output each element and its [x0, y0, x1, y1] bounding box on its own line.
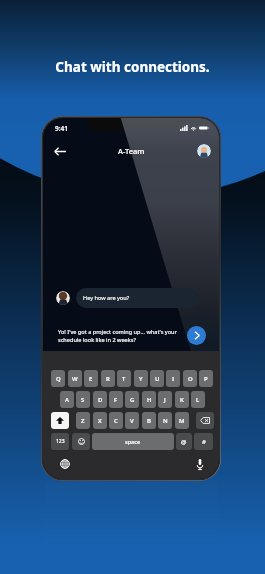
button[interactable]: Hey how are you?: [76, 288, 198, 308]
staticText: D: [98, 396, 103, 404]
staticText: C: [114, 417, 118, 425]
staticText: Yo! I've got a project coming up... what…: [58, 328, 185, 344]
staticText: K: [180, 396, 184, 404]
button[interactable]: K: [175, 391, 189, 408]
staticText: G: [130, 396, 135, 404]
staticText: V: [130, 417, 134, 425]
button[interactable]: P: [199, 370, 213, 387]
staticText: O: [188, 375, 193, 383]
staticText: A-Team: [118, 146, 145, 156]
button[interactable]: G: [125, 391, 139, 408]
staticText: Q: [56, 375, 61, 383]
staticText: N: [163, 417, 168, 425]
button[interactable]: V: [125, 412, 139, 429]
button[interactable]: Change language: [59, 458, 71, 470]
button[interactable]: E: [84, 370, 98, 387]
button[interactable]: H: [142, 391, 156, 408]
button[interactable]: A: [60, 391, 74, 408]
staticText: Y: [139, 375, 143, 383]
button[interactable]: U: [150, 370, 164, 387]
staticText: M: [179, 417, 185, 425]
button[interactable]: #: [194, 433, 213, 450]
button[interactable]: D: [93, 391, 107, 408]
button[interactable]: N: [158, 412, 172, 429]
button[interactable]: B: [142, 412, 156, 429]
staticText: A: [65, 396, 69, 404]
button[interactable]: T: [117, 370, 131, 387]
button[interactable]: R: [101, 370, 115, 387]
staticText: 123: [56, 438, 65, 445]
staticText: X: [98, 417, 102, 425]
staticText: P: [204, 375, 208, 383]
button[interactable]: S: [76, 391, 90, 408]
staticText: #: [202, 438, 206, 446]
button[interactable]: Profile: [197, 144, 211, 158]
button[interactable]: Shift: [51, 412, 69, 429]
staticText: @: [181, 438, 187, 446]
staticText: B: [147, 417, 151, 425]
button[interactable]: Back: [49, 140, 71, 162]
staticText: T: [122, 375, 126, 383]
staticText: 9:41: [55, 124, 68, 133]
button[interactable]: I: [166, 370, 180, 387]
staticText: E: [89, 375, 93, 383]
button[interactable]: space: [92, 433, 174, 450]
staticText: Z: [81, 417, 85, 425]
button[interactable]: M: [175, 412, 189, 429]
button[interactable]: Z: [76, 412, 90, 429]
button[interactable]: Emoji: [72, 433, 90, 450]
button[interactable]: Backspace: [196, 412, 214, 429]
button[interactable]: Voice input: [194, 458, 206, 470]
button[interactable]: L: [191, 391, 205, 408]
button[interactable]: Q: [51, 370, 65, 387]
button[interactable]: 123: [51, 433, 69, 450]
button[interactable]: J: [158, 391, 172, 408]
button[interactable]: Y: [134, 370, 148, 387]
staticText: R: [106, 375, 110, 383]
staticText: F: [114, 396, 118, 404]
button[interactable]: @: [176, 433, 192, 450]
button[interactable]: W: [68, 370, 82, 387]
staticText: H: [147, 396, 152, 404]
staticText: I: [172, 375, 175, 383]
button[interactable]: Send: [187, 326, 206, 345]
staticText: space: [125, 438, 141, 445]
staticText: Hey how are you?: [83, 294, 130, 302]
staticText: L: [196, 396, 200, 404]
staticText: S: [81, 396, 85, 404]
button[interactable]: F: [109, 391, 123, 408]
staticText: J: [164, 396, 166, 404]
button[interactable]: X: [93, 412, 107, 429]
button[interactable]: C: [109, 412, 123, 429]
staticText: W: [72, 375, 78, 383]
button[interactable]: O: [183, 370, 197, 387]
staticText: Chat with connections.: [0, 58, 265, 76]
staticText: U: [155, 375, 160, 383]
